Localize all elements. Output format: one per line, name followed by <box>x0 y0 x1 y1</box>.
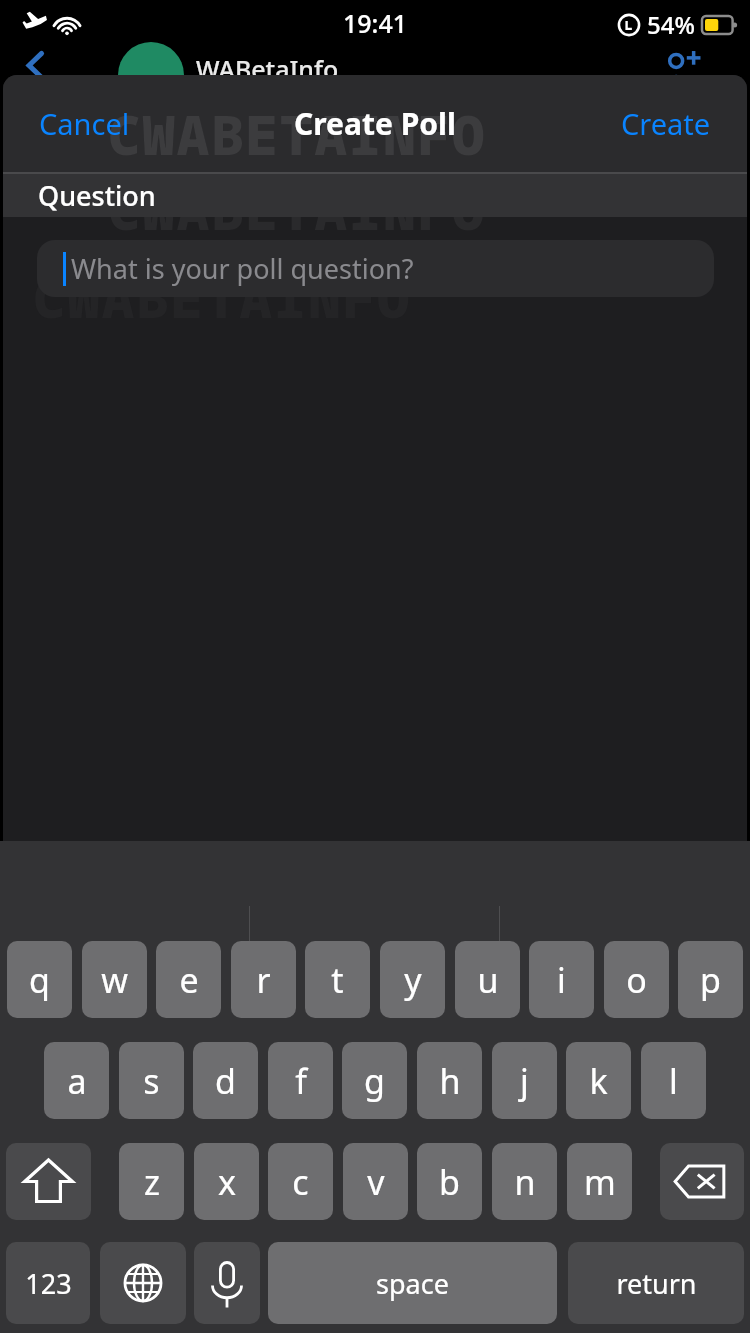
staticText: space <box>376 1265 449 1302</box>
staticText: d <box>215 1058 236 1104</box>
staticText: Create <box>621 104 711 143</box>
staticText: n <box>514 1159 536 1205</box>
staticText: What is your poll question? <box>71 250 414 287</box>
button[interactable]: p <box>678 941 743 1018</box>
button[interactable]: Backspace <box>660 1143 744 1220</box>
staticText: Create Poll <box>294 103 456 144</box>
button[interactable]: space <box>268 1242 557 1324</box>
staticText: g <box>364 1058 385 1104</box>
button[interactable]: w <box>82 941 147 1018</box>
staticText: t <box>331 957 344 1003</box>
staticText: e <box>179 957 199 1003</box>
staticText: v <box>367 1159 385 1205</box>
button[interactable]: k <box>566 1042 631 1119</box>
button[interactable]: 123 <box>6 1242 90 1324</box>
staticText: o <box>626 957 647 1003</box>
button[interactable]: y <box>380 941 445 1018</box>
button[interactable]: x <box>194 1143 259 1220</box>
button[interactable]: Cancel <box>23 96 146 151</box>
button[interactable]: n <box>492 1143 557 1220</box>
button[interactable]: q <box>7 941 72 1018</box>
staticText: i <box>557 957 566 1003</box>
button[interactable]: Dictation <box>194 1242 260 1324</box>
button[interactable]: c <box>268 1143 333 1220</box>
button[interactable]: i <box>529 941 594 1018</box>
button[interactable]: What is your poll question? <box>37 240 714 297</box>
button[interactable]: u <box>455 941 520 1018</box>
staticText: u <box>477 957 499 1003</box>
staticText: h <box>439 1058 461 1104</box>
staticText: r <box>256 957 271 1003</box>
button[interactable]: Next keyboard <box>100 1242 186 1324</box>
button[interactable]: s <box>119 1042 184 1119</box>
staticText: z <box>144 1159 160 1205</box>
button[interactable]: Create <box>605 96 727 151</box>
button[interactable]: m <box>567 1143 632 1220</box>
staticText: CWABETAINFO <box>108 172 487 246</box>
staticText: w <box>101 957 128 1003</box>
button[interactable]: v <box>343 1143 408 1220</box>
button[interactable]: z <box>119 1143 184 1220</box>
staticText: f <box>295 1058 307 1104</box>
staticText: return <box>616 1265 697 1302</box>
staticText: 123 <box>25 1265 72 1302</box>
staticText: Question <box>38 177 156 214</box>
button[interactable]: Shift <box>6 1143 91 1220</box>
staticText: 54% <box>647 8 695 41</box>
button[interactable]: b <box>417 1143 482 1220</box>
staticText: p <box>700 957 721 1003</box>
staticText: m <box>584 1159 616 1205</box>
button[interactable]: d <box>193 1042 258 1119</box>
button[interactable]: e <box>156 941 221 1018</box>
button[interactable]: g <box>342 1042 407 1119</box>
staticText: c <box>292 1159 309 1205</box>
button[interactable]: r <box>231 941 296 1018</box>
staticText: a <box>67 1058 87 1104</box>
staticText: x <box>218 1159 236 1205</box>
staticText: 19:41 <box>343 6 408 40</box>
button[interactable]: f <box>268 1042 333 1119</box>
staticText: CWABETAINFO <box>33 260 412 334</box>
staticText: s <box>143 1058 160 1104</box>
staticText: y <box>404 957 422 1003</box>
staticText: k <box>589 1058 608 1104</box>
staticText: Cancel <box>39 104 130 143</box>
staticText: b <box>439 1159 460 1205</box>
staticText: q <box>29 957 50 1003</box>
button[interactable]: t <box>305 941 370 1018</box>
staticText: j <box>520 1058 529 1104</box>
button[interactable]: l <box>641 1042 706 1119</box>
button[interactable]: j <box>492 1042 557 1119</box>
staticText: CWABETAINFO <box>108 97 487 171</box>
button[interactable]: o <box>604 941 669 1018</box>
button[interactable]: a <box>44 1042 109 1119</box>
staticText: WABetaInfo <box>196 52 339 86</box>
staticText: l <box>669 1058 678 1104</box>
button[interactable]: return <box>568 1242 744 1324</box>
button[interactable]: h <box>417 1042 482 1119</box>
